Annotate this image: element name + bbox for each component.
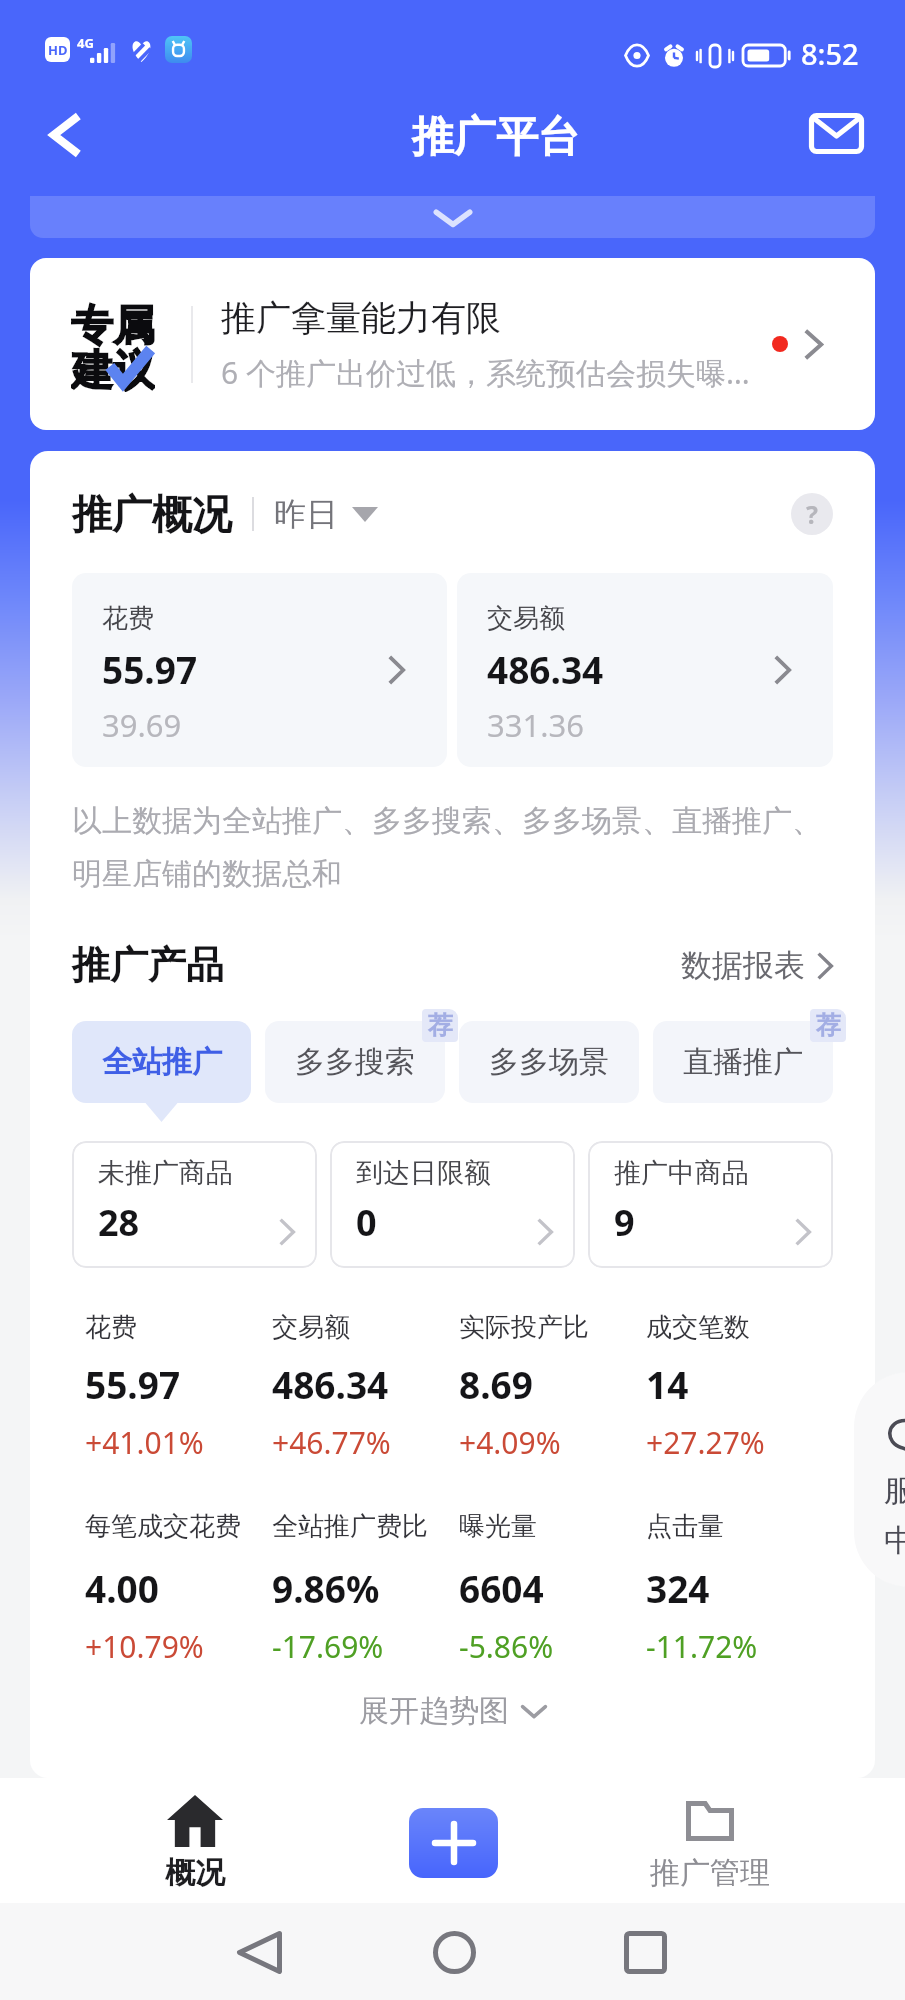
- button[interactable]: 多多搜索: [265, 1021, 445, 1103]
- staticText: 0: [356, 1198, 377, 1247]
- staticText: 花费: [85, 1311, 137, 1344]
- staticText: 荐: [816, 1010, 841, 1041]
- staticText: 交易额: [272, 1311, 350, 1344]
- button[interactable]: 专属 建议: [30, 258, 875, 430]
- staticText: 55.97: [102, 644, 198, 694]
- staticText: 486.34: [272, 1359, 389, 1409]
- staticText: 推广产品: [72, 941, 224, 989]
- staticText: +41.01%: [85, 1422, 204, 1463]
- staticText: 荐: [428, 1010, 453, 1041]
- staticText: HD: [48, 41, 68, 59]
- button[interactable]: Home: [418, 1916, 490, 1988]
- staticText: 曝光量: [459, 1510, 537, 1543]
- button[interactable]: 直播推广: [653, 1021, 833, 1103]
- button[interactable]: 展开趋势图: [72, 1692, 833, 1730]
- staticText: 9: [614, 1198, 635, 1247]
- staticText: +10.79%: [85, 1626, 204, 1667]
- staticText: 4.00: [85, 1563, 159, 1613]
- staticText: 以上数据为全站推广、多多搜索、多多场景、直播推广、明星店铺的数据总和: [72, 802, 833, 892]
- button[interactable]: 推广管理: [650, 1801, 770, 1892]
- button[interactable]: Back: [30, 98, 102, 170]
- button[interactable]: Messages: [799, 97, 873, 171]
- staticText: 331.36: [487, 704, 584, 746]
- button[interactable]: Expand panel: [30, 196, 875, 238]
- staticText: 6604: [459, 1563, 544, 1613]
- staticText: 多多场景: [489, 1043, 609, 1081]
- staticText: 昨日: [274, 494, 338, 534]
- staticText: 服: [884, 1471, 905, 1510]
- staticText: 展开趋势图: [359, 1692, 509, 1730]
- button[interactable]: 昨日: [274, 494, 378, 534]
- button[interactable]: 交易额: [457, 573, 833, 767]
- staticText: 14: [646, 1359, 689, 1409]
- staticText: 成交笔数: [646, 1311, 750, 1344]
- staticText: 8.69: [459, 1359, 533, 1409]
- staticText: 全站推广费比: [272, 1510, 428, 1543]
- staticText: 点击量: [646, 1510, 724, 1543]
- button[interactable]: 概况: [150, 1795, 240, 1892]
- staticText: 39.69: [102, 704, 182, 746]
- staticText: 推广管理: [650, 1854, 770, 1892]
- button[interactable]: Service center: [854, 1372, 905, 1587]
- staticText: -5.86%: [459, 1626, 554, 1667]
- staticText: 花费: [102, 602, 154, 635]
- staticText: 推广平台: [412, 111, 580, 164]
- button[interactable]: Back: [223, 1916, 295, 1988]
- staticText: 9.86%: [272, 1563, 380, 1613]
- staticText: 55.97: [85, 1359, 181, 1409]
- button[interactable]: Help: [791, 493, 833, 535]
- button[interactable]: 到达日限额: [330, 1141, 575, 1268]
- staticText: 全站推广: [102, 1043, 222, 1081]
- button[interactable]: 未推广商品: [72, 1141, 317, 1268]
- staticText: 未推广商品: [98, 1156, 233, 1190]
- staticText: 到达日限额: [356, 1156, 491, 1190]
- staticText: 28: [98, 1198, 140, 1247]
- staticText: 专属 建议: [71, 300, 155, 392]
- button[interactable]: 多多场景: [459, 1021, 639, 1103]
- button[interactable]: 全站推广: [72, 1021, 251, 1103]
- button[interactable]: Recents: [609, 1916, 681, 1988]
- staticText: 4G: [77, 34, 94, 52]
- staticText: 每笔成交花费: [85, 1510, 241, 1543]
- staticText: +46.77%: [272, 1422, 391, 1463]
- staticText: 概况: [165, 1854, 225, 1892]
- button[interactable]: 推广中商品: [588, 1141, 833, 1268]
- staticText: 8:52: [801, 34, 859, 73]
- staticText: 6 个推广出价过低，系统预估会损失曝…: [221, 352, 750, 393]
- staticText: 中: [884, 1521, 905, 1560]
- staticText: 推广中商品: [614, 1156, 749, 1190]
- staticText: 直播推广: [683, 1043, 803, 1081]
- button[interactable]: 花费: [72, 573, 447, 767]
- staticText: 324: [646, 1563, 710, 1613]
- staticText: +4.09%: [459, 1422, 561, 1463]
- staticText: +27.27%: [646, 1422, 765, 1463]
- staticText: 多多搜索: [295, 1043, 415, 1081]
- staticText: -17.69%: [272, 1626, 384, 1667]
- staticText: -11.72%: [646, 1626, 758, 1667]
- staticText: 486.34: [487, 644, 604, 694]
- staticText: 推广概况: [72, 489, 232, 539]
- button[interactable]: Create promotion: [409, 1808, 498, 1878]
- staticText: ?: [806, 497, 818, 531]
- button[interactable]: 数据报表: [681, 946, 833, 985]
- staticText: 实际投产比: [459, 1311, 589, 1344]
- staticText: 数据报表: [681, 946, 805, 985]
- staticText: 交易额: [487, 602, 565, 635]
- staticText: 推广拿量能力有限: [221, 296, 501, 340]
